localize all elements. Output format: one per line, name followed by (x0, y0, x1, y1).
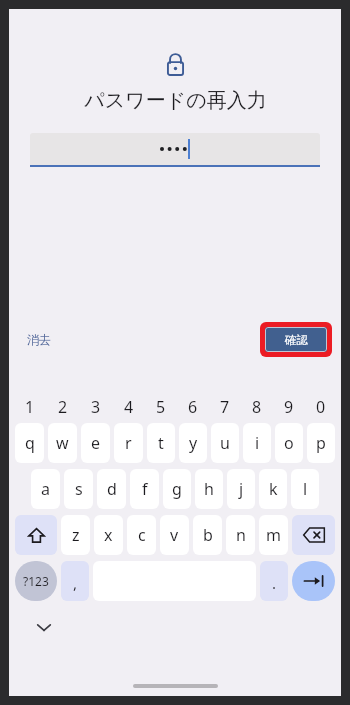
button[interactable]: 消去 (27, 332, 51, 347)
button[interactable]: . (260, 561, 288, 601)
button[interactable]: o (275, 423, 303, 463)
button[interactable]: Backspace (292, 515, 335, 555)
button[interactable]: z (61, 515, 90, 555)
staticText: パスワードの再入力 (84, 88, 267, 113)
button[interactable]: a (31, 469, 60, 509)
button[interactable]: b (193, 515, 222, 555)
button[interactable]: 8 (241, 393, 273, 420)
staticText: . (272, 573, 277, 593)
button[interactable]: r (114, 423, 143, 463)
button[interactable]: 4 (112, 393, 145, 420)
button[interactable]: d (97, 469, 126, 509)
button[interactable]: 0 (305, 393, 337, 420)
staticText: h (204, 478, 214, 500)
button[interactable]: e (81, 423, 110, 463)
button[interactable]: n (226, 515, 255, 555)
staticText: b (203, 524, 213, 546)
staticText: 7 (220, 396, 230, 418)
staticText: a (41, 478, 50, 500)
button[interactable]: q (15, 423, 44, 463)
staticText: x (104, 524, 113, 546)
staticText: , (73, 573, 78, 593)
staticText: g (172, 478, 182, 500)
staticText: d (107, 478, 117, 500)
button[interactable]: j (227, 469, 255, 509)
staticText: l (303, 478, 308, 500)
staticText: u (220, 432, 230, 454)
button[interactable]: v (160, 515, 189, 555)
staticText: r (125, 432, 132, 454)
staticText: c (138, 524, 146, 546)
staticText: p (316, 432, 326, 454)
button[interactable]: 6 (177, 393, 209, 420)
button[interactable]: f (130, 469, 159, 509)
button[interactable]: x (94, 515, 123, 555)
button[interactable]: , (61, 561, 89, 601)
staticText: 6 (188, 396, 198, 418)
button[interactable]: i (243, 423, 271, 463)
staticText: 0 (316, 396, 326, 418)
staticText: f (142, 478, 148, 500)
button[interactable]: 9 (273, 393, 305, 420)
staticText: 8 (252, 396, 262, 418)
staticText: j (239, 478, 244, 500)
staticText: ?123 (23, 573, 49, 589)
button[interactable]: 5 (145, 393, 177, 420)
staticText: 1 (25, 396, 35, 418)
staticText: 4 (124, 396, 134, 418)
staticText: m (266, 524, 281, 546)
button[interactable]: c (127, 515, 156, 555)
staticText: v (170, 524, 179, 546)
staticText: 2 (58, 396, 68, 418)
staticText: 消去 (27, 332, 51, 347)
button[interactable]: Enter (292, 561, 335, 601)
button[interactable]: y (179, 423, 207, 463)
staticText: k (269, 478, 278, 500)
button[interactable]: 1 (13, 393, 46, 420)
button[interactable]: ?123 (15, 561, 57, 601)
staticText: t (158, 432, 164, 454)
staticText: q (25, 432, 35, 454)
button[interactable]: s (64, 469, 93, 509)
staticText: y (189, 432, 198, 454)
button[interactable]: 2 (46, 393, 79, 420)
button[interactable]: Shift (15, 515, 57, 555)
button[interactable]: m (259, 515, 288, 555)
button[interactable]: 確認 (265, 327, 327, 352)
button[interactable]: w (48, 423, 77, 463)
button[interactable]: u (211, 423, 239, 463)
staticText: n (236, 524, 246, 546)
button[interactable] (30, 133, 320, 165)
button[interactable]: k (259, 469, 287, 509)
button[interactable]: 7 (209, 393, 241, 420)
button[interactable]: p (307, 423, 335, 463)
staticText: i (255, 432, 260, 454)
staticText: 3 (91, 396, 101, 418)
button[interactable]: l (291, 469, 319, 509)
staticText: w (56, 432, 69, 454)
button[interactable]: h (195, 469, 223, 509)
button[interactable]: 3 (79, 393, 112, 420)
button[interactable]: g (163, 469, 191, 509)
staticText: 9 (284, 396, 294, 418)
button[interactable]: Hide keyboard (31, 614, 57, 640)
staticText: s (75, 478, 83, 500)
staticText: 確認 (285, 333, 308, 347)
staticText: o (284, 432, 294, 454)
staticText: z (72, 524, 80, 546)
staticText: 5 (156, 396, 166, 418)
button[interactable]: t (147, 423, 175, 463)
staticText: e (91, 432, 101, 454)
